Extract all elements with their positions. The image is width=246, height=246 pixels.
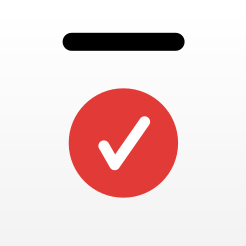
button[interactable]: Completed (69, 88, 178, 198)
button[interactable]: Title (63, 33, 185, 51)
